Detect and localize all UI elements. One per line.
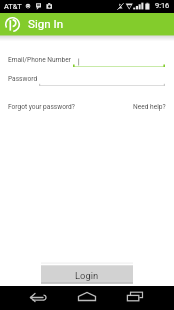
staticText: Password — [8, 75, 38, 83]
button[interactable]: Forgot your password? — [8, 103, 75, 111]
staticText: Forgot your password? — [8, 103, 75, 111]
staticText: AT&T — [4, 2, 22, 11]
staticText: Sign In — [28, 17, 64, 31]
button[interactable]: Back — [23, 286, 55, 310]
button[interactable]: Need help? — [133, 103, 166, 111]
button[interactable]: Email/Phone Number — [8, 56, 71, 64]
button[interactable] — [39, 75, 165, 86]
button[interactable]: Password — [8, 75, 38, 83]
button[interactable]: Recent apps — [119, 286, 151, 310]
staticText: Email/Phone Number — [8, 56, 71, 64]
staticText: Need help? — [133, 103, 166, 111]
staticText: Login — [75, 270, 99, 281]
button[interactable]: Login — [41, 262, 133, 284]
button[interactable]: Home — [71, 286, 103, 310]
button[interactable] — [73, 56, 165, 67]
staticText: 9:16 — [155, 1, 170, 10]
button[interactable]: Sign In — [0, 13, 64, 35]
